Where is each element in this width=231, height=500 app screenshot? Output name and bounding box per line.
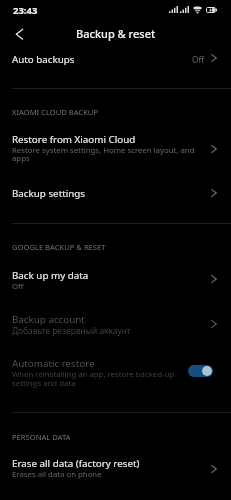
staticText: Backup settings xyxy=(12,187,86,200)
button[interactable]: Automatic restore xyxy=(0,350,231,402)
staticText: Erase all data (factory reset) xyxy=(12,457,140,470)
staticText: Back up my data xyxy=(12,269,89,282)
staticText: Добавьте резервный аккаунт xyxy=(12,325,131,336)
staticText: Restore from Xiaomi Cloud xyxy=(12,133,136,146)
staticText: Off xyxy=(12,281,24,292)
button[interactable]: Auto backups xyxy=(0,45,231,88)
staticText: XIAOMI CLOUD BACKUP xyxy=(12,107,98,117)
staticText: Backup account xyxy=(12,313,85,326)
staticText: Restore system settings, Home screen lay… xyxy=(12,145,195,156)
button[interactable]: Backup settings xyxy=(0,175,231,212)
button[interactable]: Backup account xyxy=(0,305,231,344)
button[interactable]: Back up my data xyxy=(0,262,231,300)
staticText: Auto backups xyxy=(12,53,75,66)
button[interactable]: Restore from Xiaomi Cloud xyxy=(0,125,231,170)
staticText: settings and data xyxy=(12,378,76,389)
staticText: Erases all data on phone xyxy=(12,469,102,480)
staticText: Automatic restore xyxy=(12,357,95,370)
staticText: GOOGLE BACKUP & RESET xyxy=(12,242,106,252)
staticText: Backup & reset xyxy=(76,26,156,41)
staticText: PERSONAL DATA xyxy=(12,432,71,442)
staticText: Off xyxy=(192,54,205,65)
staticText: apps xyxy=(12,153,30,164)
staticText: When reinstalling an app, restore backed… xyxy=(12,369,175,380)
button[interactable]: Back xyxy=(6,21,32,47)
button[interactable]: Erase all data (factory reset) xyxy=(0,450,231,492)
staticText: 23:43 xyxy=(13,4,38,17)
button[interactable]: Toggle automatic restore xyxy=(188,365,213,377)
